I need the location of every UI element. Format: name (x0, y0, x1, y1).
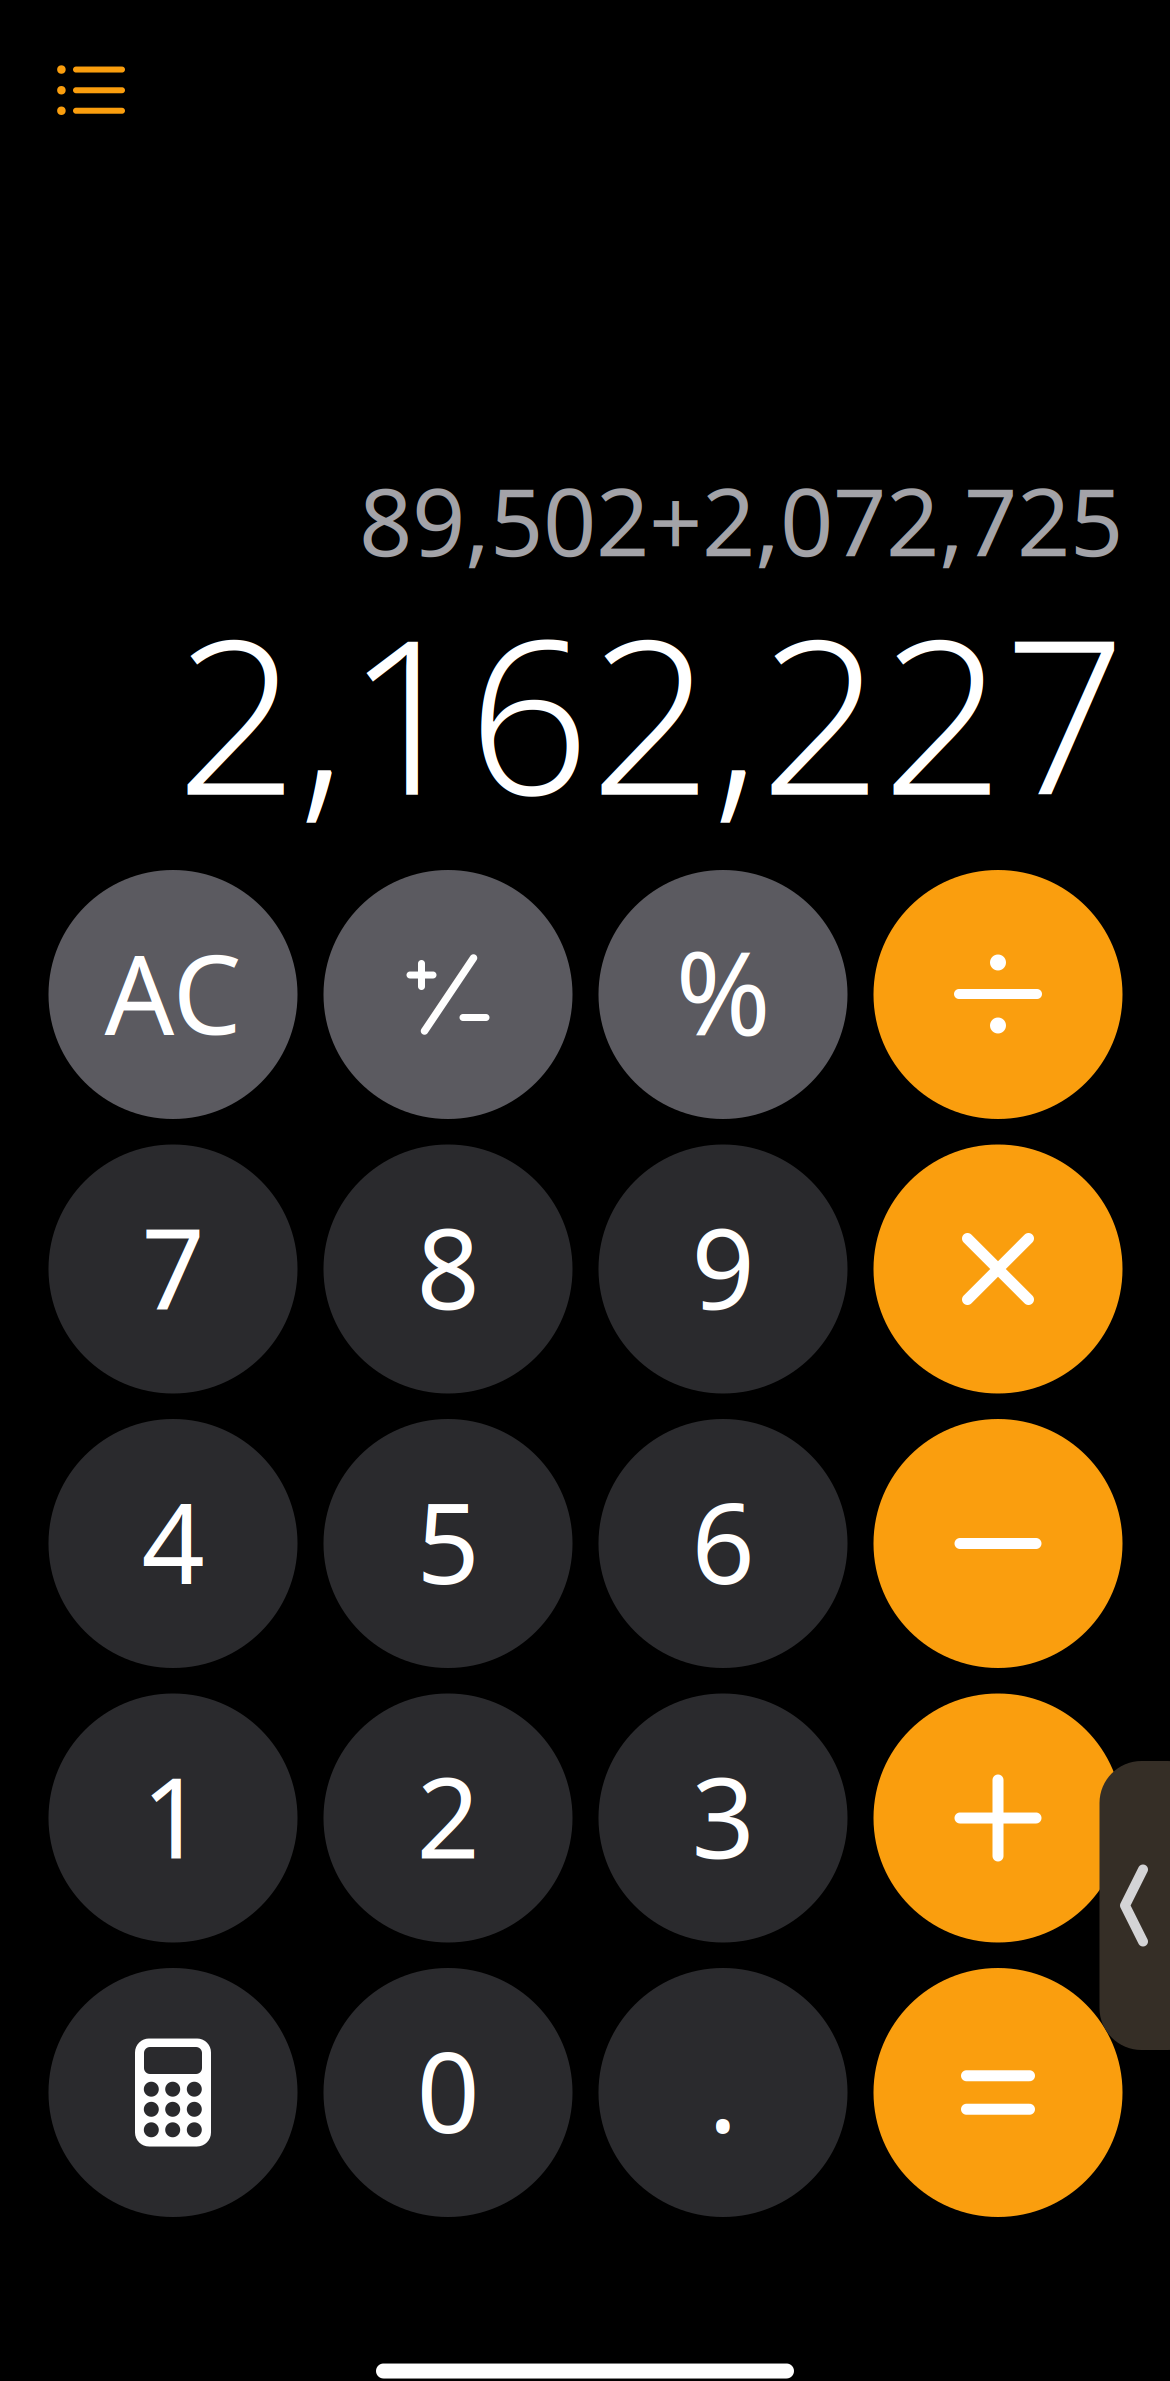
button[interactable]: Equals (873, 1968, 1122, 2217)
button[interactable]: Calculator mode (48, 1968, 297, 2217)
button[interactable]: 7 (48, 1144, 297, 1393)
button[interactable]: 1 (48, 1693, 297, 1942)
button[interactable]: 5 (323, 1419, 572, 1668)
button[interactable]: 6 (598, 1419, 847, 1668)
button[interactable]: 4 (48, 1419, 297, 1668)
button[interactable]: 9 (598, 1144, 847, 1393)
staticText: 1 (141, 1742, 204, 1889)
staticText: AC (104, 919, 241, 1065)
staticText: 6 (691, 1467, 754, 1614)
button[interactable]: History (16, 25, 166, 155)
button[interactable]: 0 (323, 1968, 572, 2217)
staticText: 2 (416, 1742, 479, 1889)
staticText: % (675, 915, 770, 1067)
staticText: 0 (416, 2016, 479, 2163)
staticText: 7 (141, 1193, 204, 1340)
button[interactable]: Percent (598, 870, 847, 1119)
button[interactable]: Add (873, 1693, 1122, 1942)
button[interactable]: 2 (323, 1693, 572, 1942)
button[interactable]: . (598, 1968, 847, 2217)
staticText: 2,162,227 (176, 570, 1126, 854)
button[interactable]: Show sidebar (1099, 1761, 1170, 2050)
button[interactable]: Positive negative (323, 870, 572, 1119)
button[interactable]: 8 (323, 1144, 572, 1393)
staticText: 89,502+2,072,725 (359, 458, 1123, 582)
button[interactable]: All clear (48, 870, 297, 1119)
staticText: 8 (416, 1193, 479, 1340)
button[interactable]: Subtract (873, 1419, 1122, 1668)
staticText: 4 (141, 1467, 204, 1614)
staticText: 3 (691, 1742, 754, 1889)
staticText: 5 (416, 1467, 479, 1614)
button[interactable]: Divide (873, 870, 1122, 1119)
staticText: . (708, 2015, 738, 2162)
staticText: 9 (691, 1193, 754, 1340)
button[interactable]: Multiply (873, 1144, 1122, 1393)
button[interactable]: 3 (598, 1693, 847, 1942)
